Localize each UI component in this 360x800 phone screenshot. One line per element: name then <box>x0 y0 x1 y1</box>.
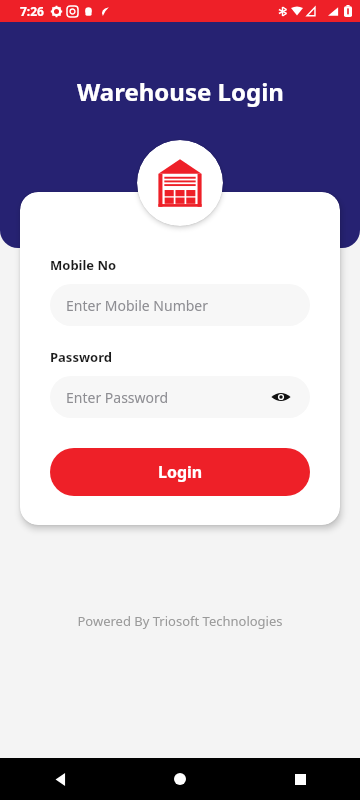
staticText: Warehouse Login <box>77 75 284 108</box>
staticText: Login <box>158 461 203 483</box>
button[interactable]: Login <box>50 448 310 496</box>
staticText: Enter Mobile Number <box>66 296 294 315</box>
staticText: 7:26 <box>20 3 44 19</box>
button[interactable]: Recent apps <box>240 758 360 800</box>
button[interactable]: Home <box>120 758 240 800</box>
staticText: Enter Password <box>66 388 268 407</box>
button[interactable]: Show password <box>268 384 294 410</box>
staticText: Mobile No <box>50 256 117 274</box>
staticText: Password <box>50 348 112 366</box>
button[interactable]: Enter Mobile Number <box>50 284 310 326</box>
staticText: Powered By Triosoft Technologies <box>77 612 283 630</box>
button[interactable]: Enter Password <box>50 376 310 418</box>
button[interactable]: Back <box>0 758 120 800</box>
